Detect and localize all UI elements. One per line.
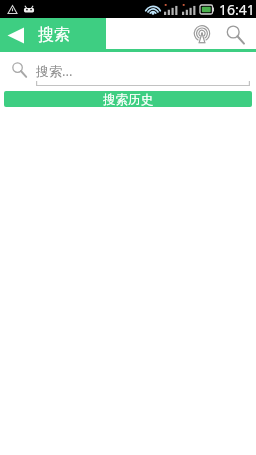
button[interactable]: 搜索历史 — [4, 91, 252, 107]
staticText: 搜索... — [36, 62, 73, 80]
staticText: 搜索历史 — [103, 92, 153, 107]
other: Search — [11, 62, 27, 78]
button[interactable]: 搜索 — [0, 18, 106, 52]
button[interactable]: Search — [0, 52, 256, 91]
button[interactable]: Search — [218, 18, 251, 52]
staticText: 搜索 — [38, 25, 70, 45]
button[interactable]: Voice search — [185, 18, 218, 52]
staticText: 16:41 — [219, 0, 255, 18]
